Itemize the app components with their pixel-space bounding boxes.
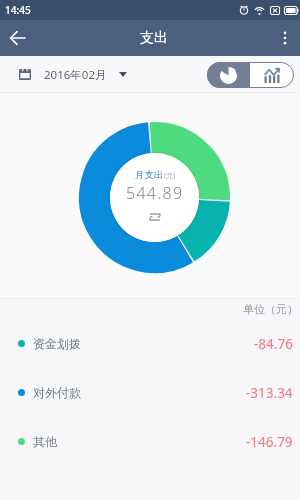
staticText: 对外付款 xyxy=(33,385,81,400)
button[interactable]: More options xyxy=(270,23,300,53)
staticText: 14:45 xyxy=(5,3,31,17)
staticText: 月支出 xyxy=(135,169,164,181)
button[interactable]: Back xyxy=(0,21,34,55)
staticText: 资金划拨 xyxy=(33,336,81,351)
staticText: -146.79 xyxy=(246,433,293,451)
button[interactable]: 其他 xyxy=(0,417,300,466)
staticText: -84.76 xyxy=(254,335,293,353)
staticText: 单位（元） xyxy=(243,302,298,316)
staticText: 544.89 xyxy=(126,182,184,204)
button[interactable]: 资金划拨 xyxy=(0,319,300,368)
button[interactable]: Bar chart view xyxy=(250,62,294,88)
staticText: 支出 xyxy=(140,29,168,47)
button[interactable]: 2016年02月 xyxy=(19,56,127,93)
button[interactable]: Switch xyxy=(146,210,164,223)
staticText: (元) xyxy=(164,171,176,181)
staticText: -313.34 xyxy=(246,384,293,402)
button[interactable]: Pie chart view xyxy=(207,62,250,88)
button[interactable]: 对外付款 xyxy=(0,368,300,417)
staticText: 2016年02月 xyxy=(44,67,107,83)
staticText: 其他 xyxy=(33,434,57,449)
